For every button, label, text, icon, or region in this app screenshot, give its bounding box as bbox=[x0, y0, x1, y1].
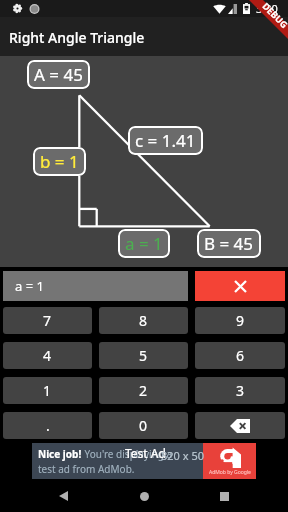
button[interactable]: . bbox=[3, 412, 92, 439]
button[interactable]: Recents bbox=[208, 480, 240, 512]
button[interactable]: Home bbox=[128, 480, 160, 512]
button[interactable]: c = 1.41 bbox=[135, 129, 196, 152]
button[interactable]: 7 bbox=[3, 307, 92, 334]
staticText: 5 bbox=[139, 346, 148, 365]
staticText: a = 1 bbox=[125, 232, 163, 255]
button[interactable]: a = 1 bbox=[125, 232, 163, 255]
button[interactable]: Back bbox=[47, 480, 79, 512]
button[interactable]: A = 45 bbox=[34, 63, 83, 86]
button[interactable]: 6 bbox=[195, 342, 285, 369]
button[interactable]: Clear bbox=[195, 271, 285, 301]
staticText: 3 bbox=[236, 381, 245, 400]
button[interactable]: 5 bbox=[99, 342, 188, 369]
button[interactable]: a = 1 bbox=[3, 271, 188, 301]
staticText: test ad from AdMob. bbox=[38, 462, 135, 476]
staticText: AdMob by Google bbox=[209, 469, 251, 476]
staticText: 6 bbox=[236, 346, 245, 365]
button[interactable]: 3 bbox=[195, 377, 285, 404]
button[interactable]: 9 bbox=[195, 307, 285, 334]
button[interactable]: B = 45 bbox=[204, 232, 254, 255]
staticText: Right Angle Triangle bbox=[9, 28, 145, 47]
staticText: DEBUG bbox=[260, 0, 288, 30]
staticText: b = 1 bbox=[40, 150, 79, 173]
staticText: . bbox=[46, 416, 50, 435]
staticText: B = 45 bbox=[204, 232, 254, 255]
button[interactable]: Nice job! bbox=[32, 443, 256, 479]
staticText: 9 bbox=[236, 311, 245, 330]
staticText: 0 bbox=[139, 416, 148, 435]
staticText: 8 bbox=[139, 311, 148, 330]
button[interactable]: 0 bbox=[99, 412, 188, 439]
staticText: 4 bbox=[43, 346, 52, 365]
button[interactable]: 1 bbox=[3, 377, 92, 404]
staticText: 7 bbox=[43, 311, 52, 330]
button[interactable]: 2 bbox=[99, 377, 188, 404]
button[interactable]: b = 1 bbox=[40, 150, 79, 173]
button[interactable]: Backspace bbox=[195, 412, 285, 439]
staticText: 1 bbox=[43, 381, 52, 400]
button[interactable]: 4 bbox=[3, 342, 92, 369]
staticText: Nice job! bbox=[38, 447, 82, 461]
button[interactable]: 8 bbox=[99, 307, 188, 334]
staticText: a = 1 bbox=[15, 277, 44, 295]
staticText: Test Ad bbox=[125, 445, 166, 461]
staticText: You're displaying a bbox=[82, 447, 173, 461]
staticText: 2 bbox=[139, 381, 148, 400]
staticText: A = 45 bbox=[34, 63, 83, 86]
staticText: c = 1.41 bbox=[135, 129, 196, 152]
staticText: 320 x 50 bbox=[161, 448, 204, 463]
staticText: 3:00 bbox=[256, 1, 278, 16]
